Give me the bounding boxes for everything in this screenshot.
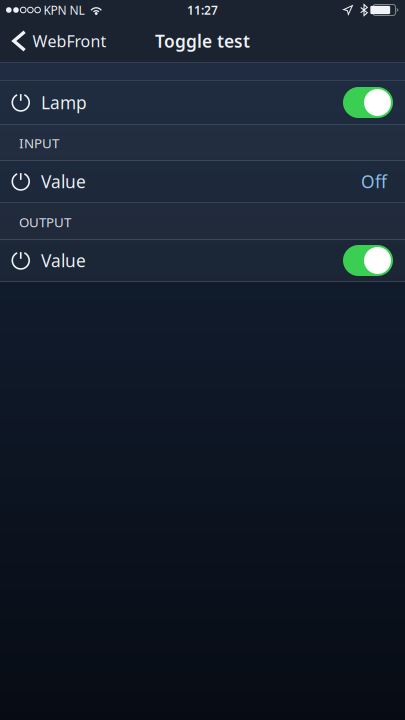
staticText: Value: [41, 170, 86, 193]
staticText: KPN NL: [43, 2, 84, 18]
staticText: Toggle test: [155, 29, 250, 52]
staticText: Value: [41, 249, 86, 272]
button[interactable]: Lamp: [0, 81, 405, 125]
button[interactable]: Value: [0, 161, 405, 203]
staticText: 11:27: [187, 2, 218, 18]
staticText: WebFront: [32, 30, 106, 52]
button[interactable]: WebFront: [0, 20, 116, 62]
staticText: Off: [361, 170, 387, 193]
staticText: OUTPUT: [19, 213, 71, 231]
button[interactable]: Value: [0, 240, 405, 282]
staticText: INPUT: [19, 134, 59, 152]
staticText: Lamp: [41, 91, 87, 114]
